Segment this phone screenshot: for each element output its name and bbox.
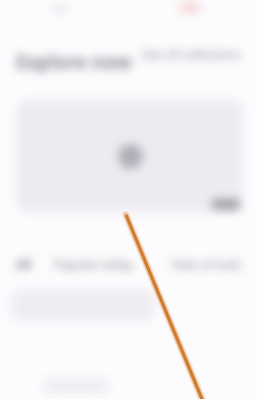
staticText: See all collections bbox=[142, 46, 241, 62]
staticText: Popular today bbox=[54, 256, 134, 272]
button[interactable] bbox=[17, 100, 243, 212]
staticText: All bbox=[16, 256, 32, 272]
staticText: Explore now bbox=[16, 49, 132, 75]
other: Notifications bbox=[180, 2, 200, 13]
staticText: New arrivals bbox=[172, 256, 242, 272]
